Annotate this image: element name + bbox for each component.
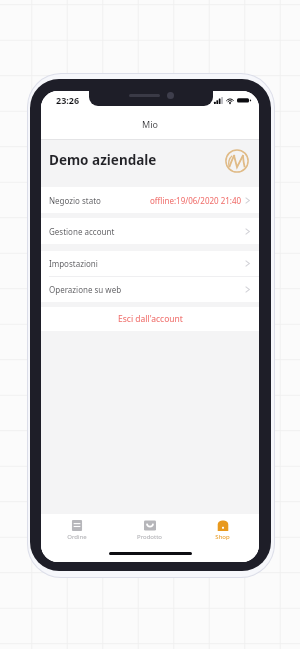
button[interactable]: Negozio stato bbox=[41, 187, 259, 213]
button[interactable]: Shop bbox=[186, 520, 259, 562]
staticText: Shop bbox=[215, 533, 230, 541]
button[interactable]: Gestione account bbox=[41, 218, 259, 244]
staticText: Prodotto bbox=[137, 533, 162, 541]
staticText: Mio bbox=[142, 118, 158, 130]
staticText: Negozio stato bbox=[49, 195, 101, 206]
staticText: Demo aziendale bbox=[49, 151, 157, 169]
button[interactable]: Esci dall'account bbox=[41, 307, 259, 331]
button[interactable]: Ordine bbox=[41, 520, 113, 562]
button[interactable]: Operazione su web bbox=[41, 277, 259, 302]
staticText: 23:26 bbox=[56, 94, 80, 106]
staticText: Esci dall'account bbox=[118, 313, 183, 325]
button[interactable]: Prodotto bbox=[113, 520, 186, 562]
button[interactable]: Impostazioni bbox=[41, 251, 259, 276]
staticText: Ordine bbox=[67, 533, 87, 541]
staticText: Gestione account bbox=[49, 226, 115, 237]
staticText: Impostazioni bbox=[49, 258, 98, 269]
staticText: Operazione su web bbox=[49, 284, 122, 295]
staticText: offline:19/06/2020 21:40 bbox=[150, 195, 242, 206]
